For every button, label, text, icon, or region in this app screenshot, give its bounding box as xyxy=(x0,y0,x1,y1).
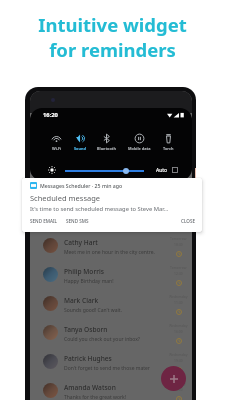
staticText: Mark Clark xyxy=(64,296,99,305)
staticText: Auto xyxy=(156,167,168,174)
button[interactable]: Messages Scheduler · 25 min ago xyxy=(22,178,202,232)
staticText: Intuitive widget xyxy=(38,12,187,37)
button[interactable]: Tanya Osborn xyxy=(43,318,186,347)
staticText: Tanya Osborn xyxy=(64,325,108,334)
button[interactable]: Cathy Hart xyxy=(43,231,186,260)
staticText: Amanda Watson xyxy=(64,383,116,392)
staticText: Could you check out your inbox? xyxy=(64,336,141,343)
button[interactable]: Sound xyxy=(74,133,86,151)
staticText: Happy Birthday man! xyxy=(64,278,114,285)
button[interactable]: CLOSE xyxy=(181,218,195,224)
staticText: Wi-Fi xyxy=(52,146,62,151)
button[interactable]: SEND EMAIL xyxy=(30,218,58,224)
staticText: Scheduled message xyxy=(30,193,101,203)
staticText: Sounds good! Can't wait. xyxy=(64,307,122,314)
button[interactable]: Bluetooth xyxy=(97,133,116,151)
staticText: Bluetooth xyxy=(97,146,116,151)
staticText: Thursday xyxy=(171,381,186,386)
staticText: Mobile data xyxy=(128,146,151,151)
button[interactable]: Wi-Fi xyxy=(51,133,62,151)
staticText: Thanks for the great work! xyxy=(64,394,127,400)
staticText: Don't forget to send me those mater xyxy=(64,365,150,372)
staticText: Torch xyxy=(163,146,174,151)
button[interactable]: Amanda Watson xyxy=(43,376,186,400)
button[interactable]: Mobile data xyxy=(128,133,151,151)
staticText: 09:00 xyxy=(174,387,183,392)
staticText: for reminders xyxy=(49,37,176,62)
button[interactable]: Mark Clark xyxy=(43,289,186,318)
staticText: Cathy Hart xyxy=(64,238,98,247)
button[interactable]: Auto brightness xyxy=(172,167,178,173)
staticText: 16:20 xyxy=(43,111,58,119)
button[interactable]: Philip Morris xyxy=(43,260,186,289)
staticText: Meet me in one hour in the city centre. xyxy=(64,249,155,256)
button[interactable]: New scheduled message xyxy=(161,366,186,391)
staticText: Sound xyxy=(74,146,86,151)
staticText: Messages Scheduler · 25 min ago xyxy=(40,182,123,189)
staticText: Philip Morris xyxy=(64,267,104,276)
button[interactable]: SEND SMS xyxy=(66,218,89,224)
button[interactable]: Patrick Hughes xyxy=(43,347,186,376)
staticText: It's time to send scheduled message to S… xyxy=(30,205,169,213)
staticText: Patrick Hughes xyxy=(64,354,112,363)
button[interactable]: Torch xyxy=(163,133,174,151)
